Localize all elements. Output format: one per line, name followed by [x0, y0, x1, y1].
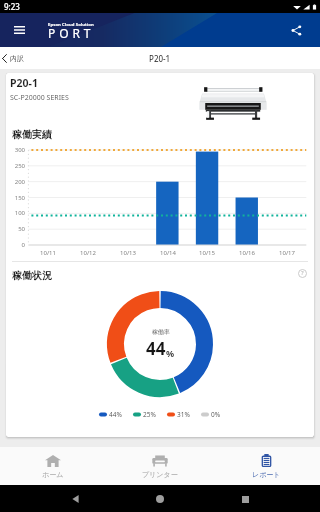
staticText: 25%: [143, 410, 156, 419]
button[interactable]: Help: [296, 267, 308, 279]
button[interactable]: 31%: [167, 410, 190, 419]
staticText: SC-P20000 SERIES: [10, 93, 69, 103]
staticText: 0%: [211, 410, 221, 419]
staticText: P O R T: [48, 25, 91, 41]
staticText: 稼働率: [152, 328, 170, 336]
staticText: 50: [6, 225, 25, 233]
staticText: Epson Cloud Solution: [48, 22, 94, 28]
staticText: レポート: [252, 470, 281, 479]
staticText: 10/17: [267, 249, 307, 257]
staticText: 44: [146, 337, 166, 360]
button[interactable]: Menu: [9, 20, 29, 40]
staticText: P20-1: [10, 76, 38, 90]
staticText: 200: [6, 178, 25, 186]
button[interactable]: Recents: [235, 489, 255, 509]
button[interactable]: Share: [286, 20, 306, 40]
button[interactable]: プリンター: [106, 447, 213, 485]
staticText: 内訳: [10, 54, 24, 63]
staticText: 9:23: [4, 1, 20, 12]
button[interactable]: 0%: [201, 410, 221, 419]
staticText: 稼働状況: [12, 269, 52, 282]
staticText: 稼働実績: [12, 128, 52, 141]
staticText: %: [166, 347, 175, 359]
button[interactable]: 44%: [99, 410, 122, 419]
button[interactable]: 25%: [133, 410, 156, 419]
staticText: 10/15: [187, 249, 227, 257]
staticText: 10/12: [68, 249, 108, 257]
staticText: 300: [6, 146, 25, 154]
staticText: プリンター: [142, 470, 178, 479]
staticText: 10/16: [227, 249, 267, 257]
staticText: 10/14: [148, 249, 188, 257]
staticText: 250: [6, 162, 25, 170]
button[interactable]: レポート: [213, 447, 320, 485]
button[interactable]: Home: [150, 489, 170, 509]
staticText: 44%: [109, 410, 122, 419]
staticText: 100: [6, 209, 25, 217]
staticText: P20-1: [149, 53, 171, 64]
staticText: 0: [6, 241, 25, 249]
staticText: 10/13: [108, 249, 148, 257]
button[interactable]: 内訳: [0, 47, 30, 69]
staticText: ?: [301, 269, 304, 277]
staticText: 150: [6, 194, 25, 202]
button[interactable]: ホーム: [0, 447, 106, 485]
button[interactable]: Back: [65, 489, 85, 509]
staticText: 10/11: [28, 249, 68, 257]
staticText: 31%: [177, 410, 190, 419]
staticText: ホーム: [42, 470, 64, 479]
